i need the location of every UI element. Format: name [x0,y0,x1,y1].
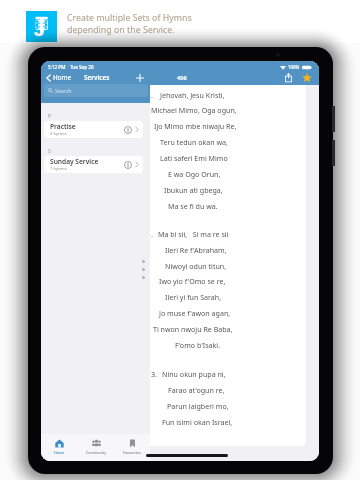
staticText: Ma se fi du wa. [168,201,218,211]
staticText: . [151,229,153,239]
staticText: 5:12 PM [48,64,66,70]
staticText: Niwoyi odun titun, [165,261,227,271]
button[interactable]: Sunday Service [44,156,143,173]
staticText: S [48,148,51,155]
staticText: Ileri Re f'Abraham, [165,245,227,255]
staticText: Home [54,450,65,455]
button[interactable]: Favourite [299,70,314,85]
staticText: Ninu okun pupa ni, [162,369,226,379]
button[interactable]: Add set [132,70,147,85]
staticText: Create multiple Sets of Hymns [67,12,192,24]
staticText: 2 hymns [50,131,67,137]
staticText: Home [53,73,72,82]
staticText: 406 [177,74,187,82]
staticText: Teru tedun okan wa, [160,137,228,147]
button[interactable]: Back [43,70,75,85]
staticText: P [48,113,52,120]
staticText: Search [55,87,72,94]
staticText: Lati saferi Emi Mimo [160,153,228,163]
staticText: Jehovah, Jesu Kristi, [160,90,225,100]
button[interactable]: Share [281,70,296,85]
staticText: Ibukun ati gbega, [164,185,223,195]
staticText: Sunday Service [50,157,99,166]
button[interactable]: Favourites [114,434,150,461]
button[interactable]: Search [44,84,148,97]
staticText: Iwo yio f'Omo se re, [159,276,226,286]
staticText: E wa Ogo Orun, [168,169,221,179]
staticText: Services [84,73,110,82]
staticText: Practise [50,122,76,131]
staticText: 1 hymns [50,166,67,172]
staticText: Fun isimi okan Israel, [162,417,233,427]
staticText: Favourites [123,450,141,455]
staticText: 3. [151,369,157,379]
staticText: Ti nwon nwoju Re Baba, [153,324,233,334]
staticText: Community [86,450,107,455]
staticText: Tue Sep 26 [70,64,94,70]
staticText: Michael Mimo, Oga ogun, [151,105,237,115]
other: Back [46,74,51,82]
staticText: 100% [288,64,300,70]
staticText: . [151,90,153,100]
staticText: Parun laigberi mo, [167,401,229,411]
staticText: Jo muse f'awon agan, [159,308,231,318]
staticText: Ileri yi fun Sarah, [165,292,222,302]
staticText: Ijo Mimo mbe niwaju Re, [154,121,237,131]
button[interactable]: Practise [44,121,143,138]
button[interactable]: Home [41,434,78,461]
staticText: Farao at'ogun re, [168,385,225,395]
staticText: F'omo b'Isaki. [175,340,221,350]
staticText: depending on the Service. [67,24,175,36]
staticText: Ma bi sii, Si ma re sii [158,229,229,239]
button[interactable]: Community [78,434,114,461]
